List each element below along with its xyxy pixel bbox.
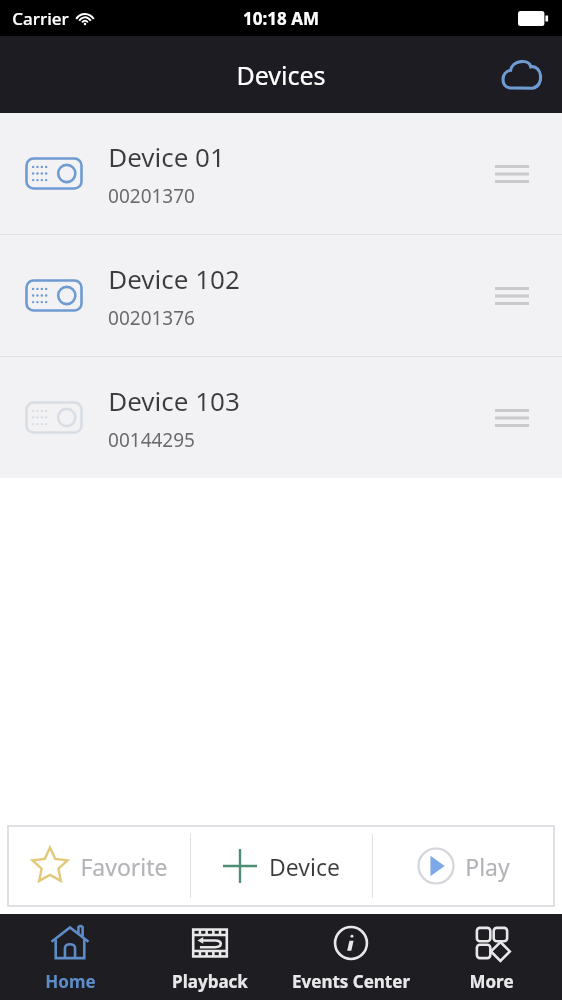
button[interactable]: Device 103: [0, 357, 562, 478]
button[interactable]: Home: [0, 914, 140, 1000]
button[interactable]: Reorder: [490, 396, 534, 440]
button[interactable]: Favorite: [8, 826, 190, 906]
staticText: 00201376: [108, 305, 195, 331]
staticText: Play: [465, 851, 510, 882]
button[interactable]: Playback: [140, 914, 280, 1000]
button[interactable]: Cloud: [496, 49, 548, 101]
button[interactable]: Device 102: [0, 235, 562, 356]
staticText: Events Center: [292, 970, 410, 993]
button[interactable]: More: [421, 914, 562, 1000]
staticText: Carrier: [12, 7, 69, 30]
button[interactable]: Device 01: [0, 113, 562, 234]
button[interactable]: Events Center: [280, 914, 421, 1000]
button[interactable]: Reorder: [490, 152, 534, 196]
staticText: 00201370: [108, 183, 195, 209]
staticText: 00144295: [108, 427, 195, 453]
button[interactable]: Device: [191, 826, 372, 906]
staticText: Home: [45, 970, 96, 993]
staticText: Device 102: [108, 261, 240, 296]
staticText: 10:18 AM: [243, 7, 319, 30]
button[interactable]: Reorder: [490, 274, 534, 318]
staticText: Favorite: [80, 851, 168, 882]
staticText: Playback: [172, 970, 248, 993]
staticText: Devices: [236, 58, 326, 92]
staticText: Device: [269, 851, 340, 882]
button[interactable]: Play: [373, 826, 554, 906]
staticText: More: [469, 970, 514, 993]
staticText: Device 103: [108, 383, 240, 418]
staticText: Device 01: [108, 139, 225, 174]
